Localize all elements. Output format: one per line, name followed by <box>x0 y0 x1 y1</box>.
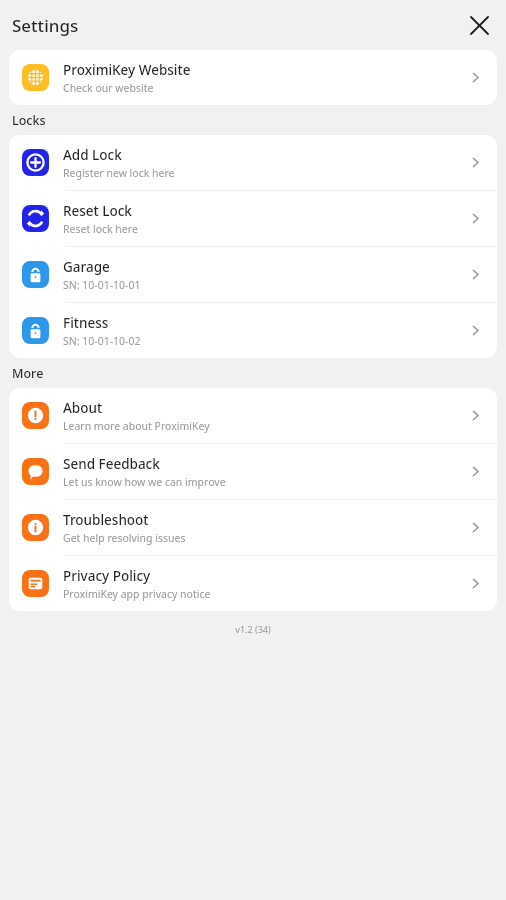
staticText: Learn more about ProximiKey <box>63 419 210 433</box>
staticText: Settings <box>12 14 79 37</box>
staticText: v1.2 (34) <box>0 623 506 635</box>
button[interactable]: Privacy Policy <box>9 556 497 611</box>
button[interactable]: ProximiKey Website <box>9 50 497 105</box>
button[interactable]: Garage <box>9 247 497 302</box>
staticText: ProximiKey app privacy notice <box>63 587 211 601</box>
button[interactable]: Fitness <box>9 303 497 358</box>
staticText: Locks <box>12 112 46 129</box>
staticText: Reset Lock <box>63 202 132 220</box>
staticText: Get help resolving issues <box>63 531 186 545</box>
staticText: Check our website <box>63 81 154 95</box>
staticText: Add Lock <box>63 146 122 164</box>
button[interactable]: Troubleshoot <box>9 500 497 555</box>
staticText: Register new lock here <box>63 166 175 180</box>
staticText: Fitness <box>63 314 109 332</box>
button[interactable]: Add Lock <box>9 135 497 190</box>
staticText: ProximiKey Website <box>63 61 191 79</box>
button[interactable]: Send Feedback <box>9 444 497 499</box>
staticText: Privacy Policy <box>63 567 151 585</box>
staticText: SN: 10-01-10-02 <box>63 334 141 348</box>
staticText: More <box>12 365 44 382</box>
button[interactable]: About <box>9 388 497 443</box>
staticText: Reset lock here <box>63 222 138 236</box>
staticText: Garage <box>63 258 110 276</box>
staticText: Troubleshoot <box>63 511 149 529</box>
staticText: Let us know how we can improve <box>63 475 226 489</box>
staticText: SN: 10-01-10-01 <box>63 278 141 292</box>
button[interactable]: Close <box>462 8 496 42</box>
staticText: Send Feedback <box>63 455 160 473</box>
button[interactable]: Reset Lock <box>9 191 497 246</box>
staticText: About <box>63 399 103 417</box>
